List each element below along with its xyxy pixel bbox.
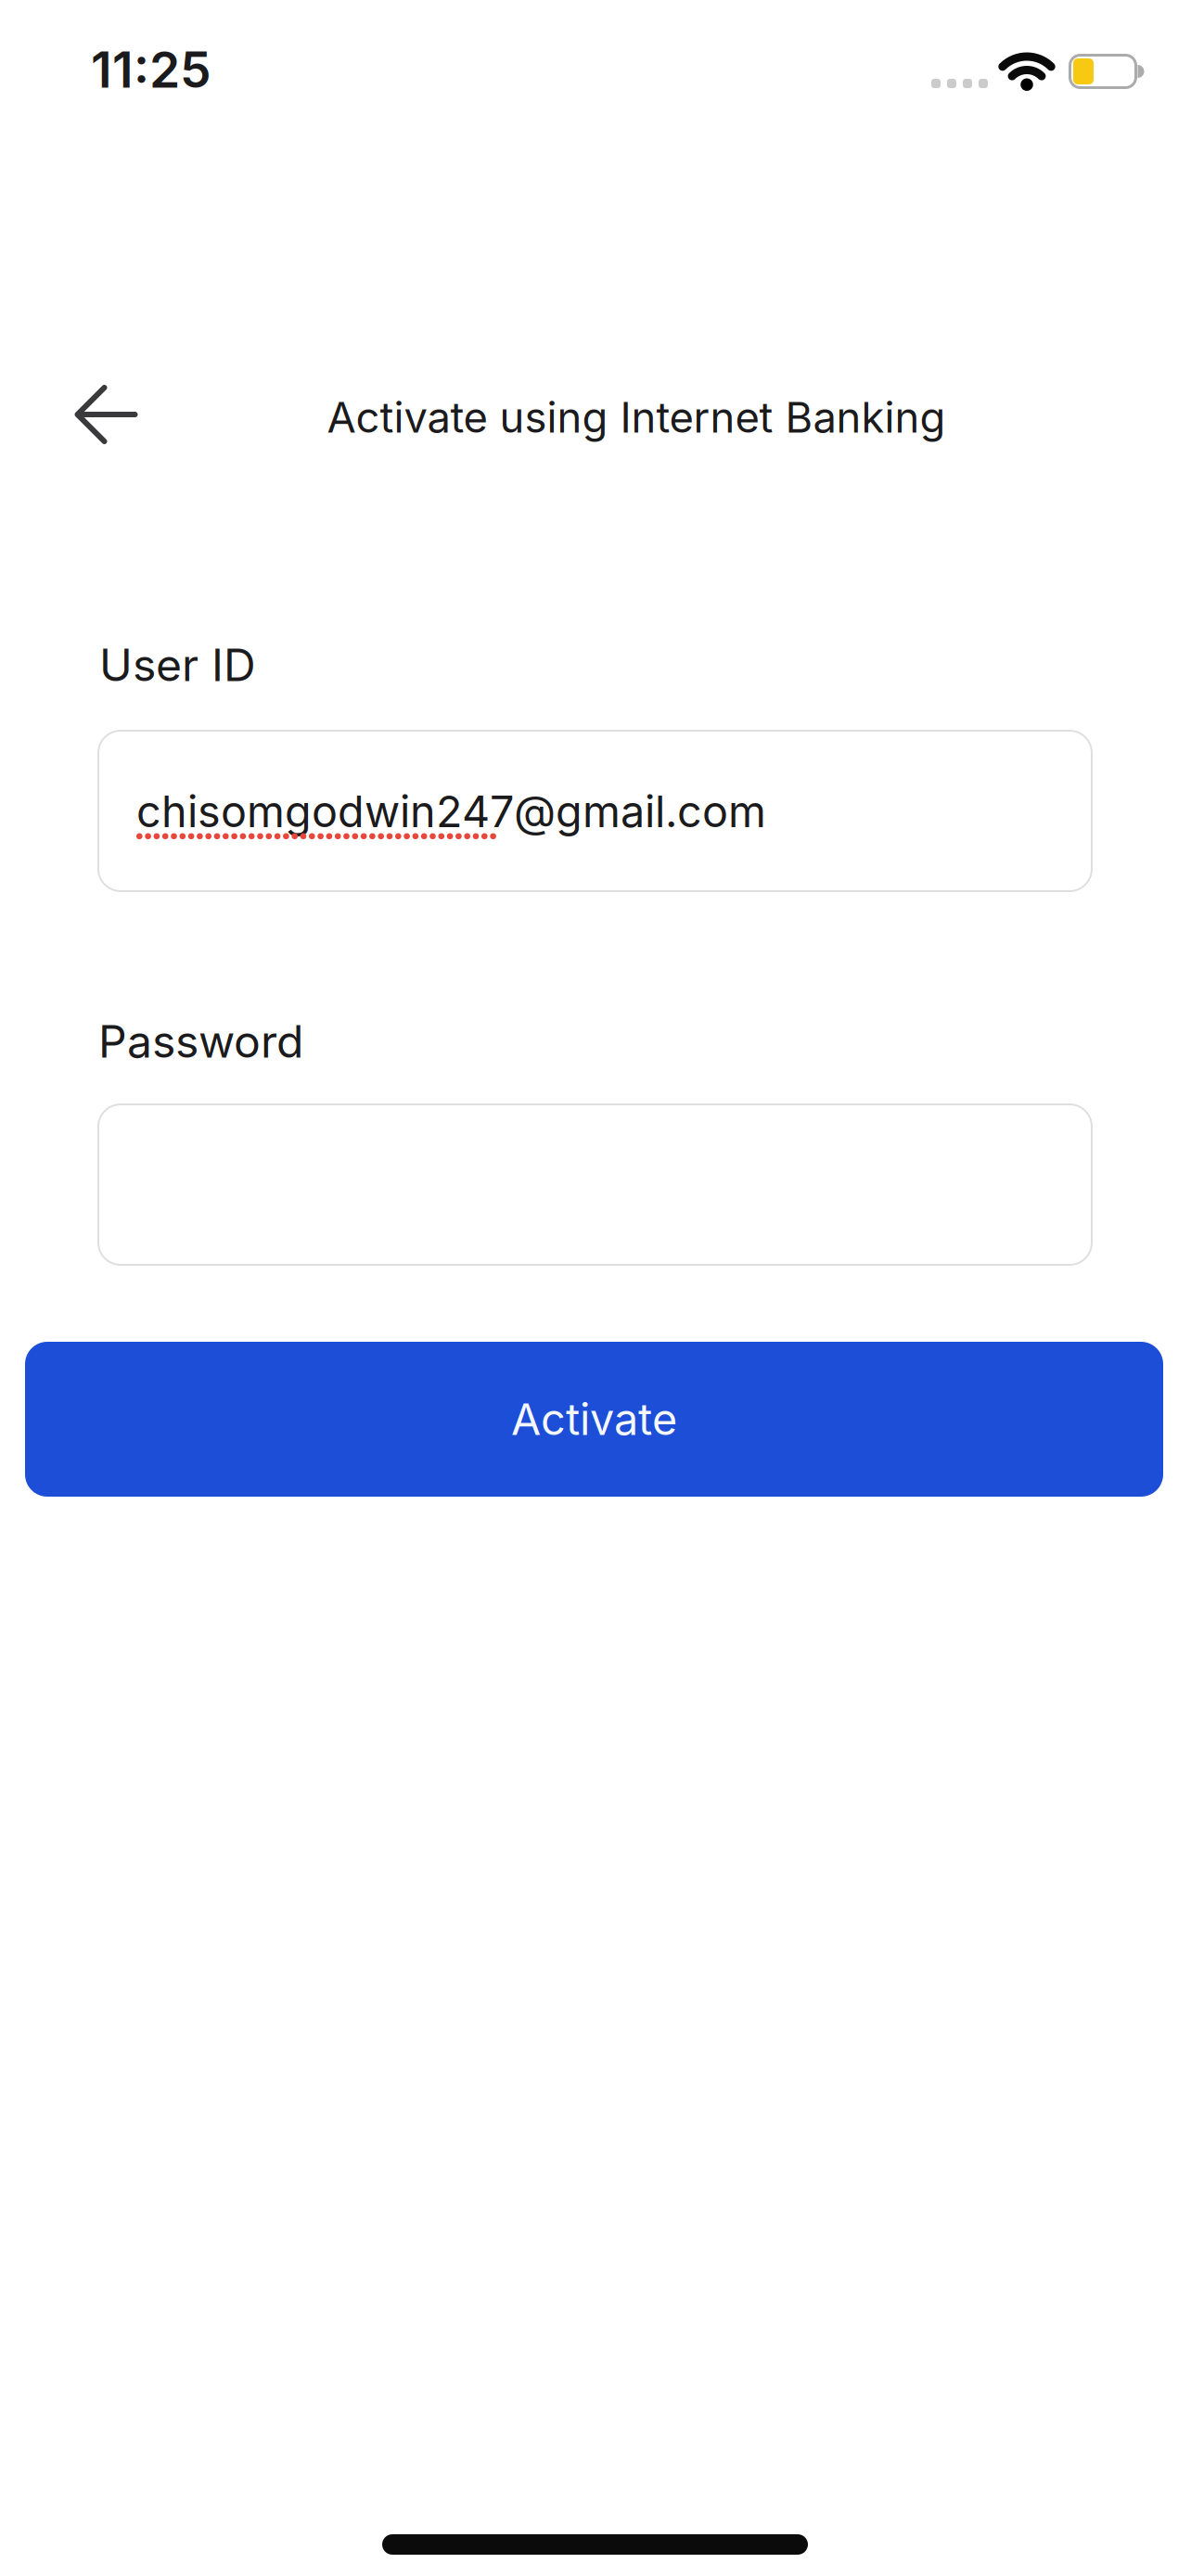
staticText: Activate using Internet Banking (327, 393, 946, 442)
button[interactable]: Password text field (97, 1103, 1093, 1266)
staticText: Password (98, 1015, 303, 1068)
button[interactable]: User ID text field (97, 730, 1093, 892)
button[interactable]: Activate (25, 1342, 1163, 1497)
button[interactable]: Back (60, 371, 152, 458)
staticText: 11:25 (91, 40, 211, 99)
staticText: Activate (511, 1394, 677, 1445)
staticText: User ID (99, 639, 256, 691)
staticText: chisomgodwin247@gmail.com (136, 786, 766, 837)
